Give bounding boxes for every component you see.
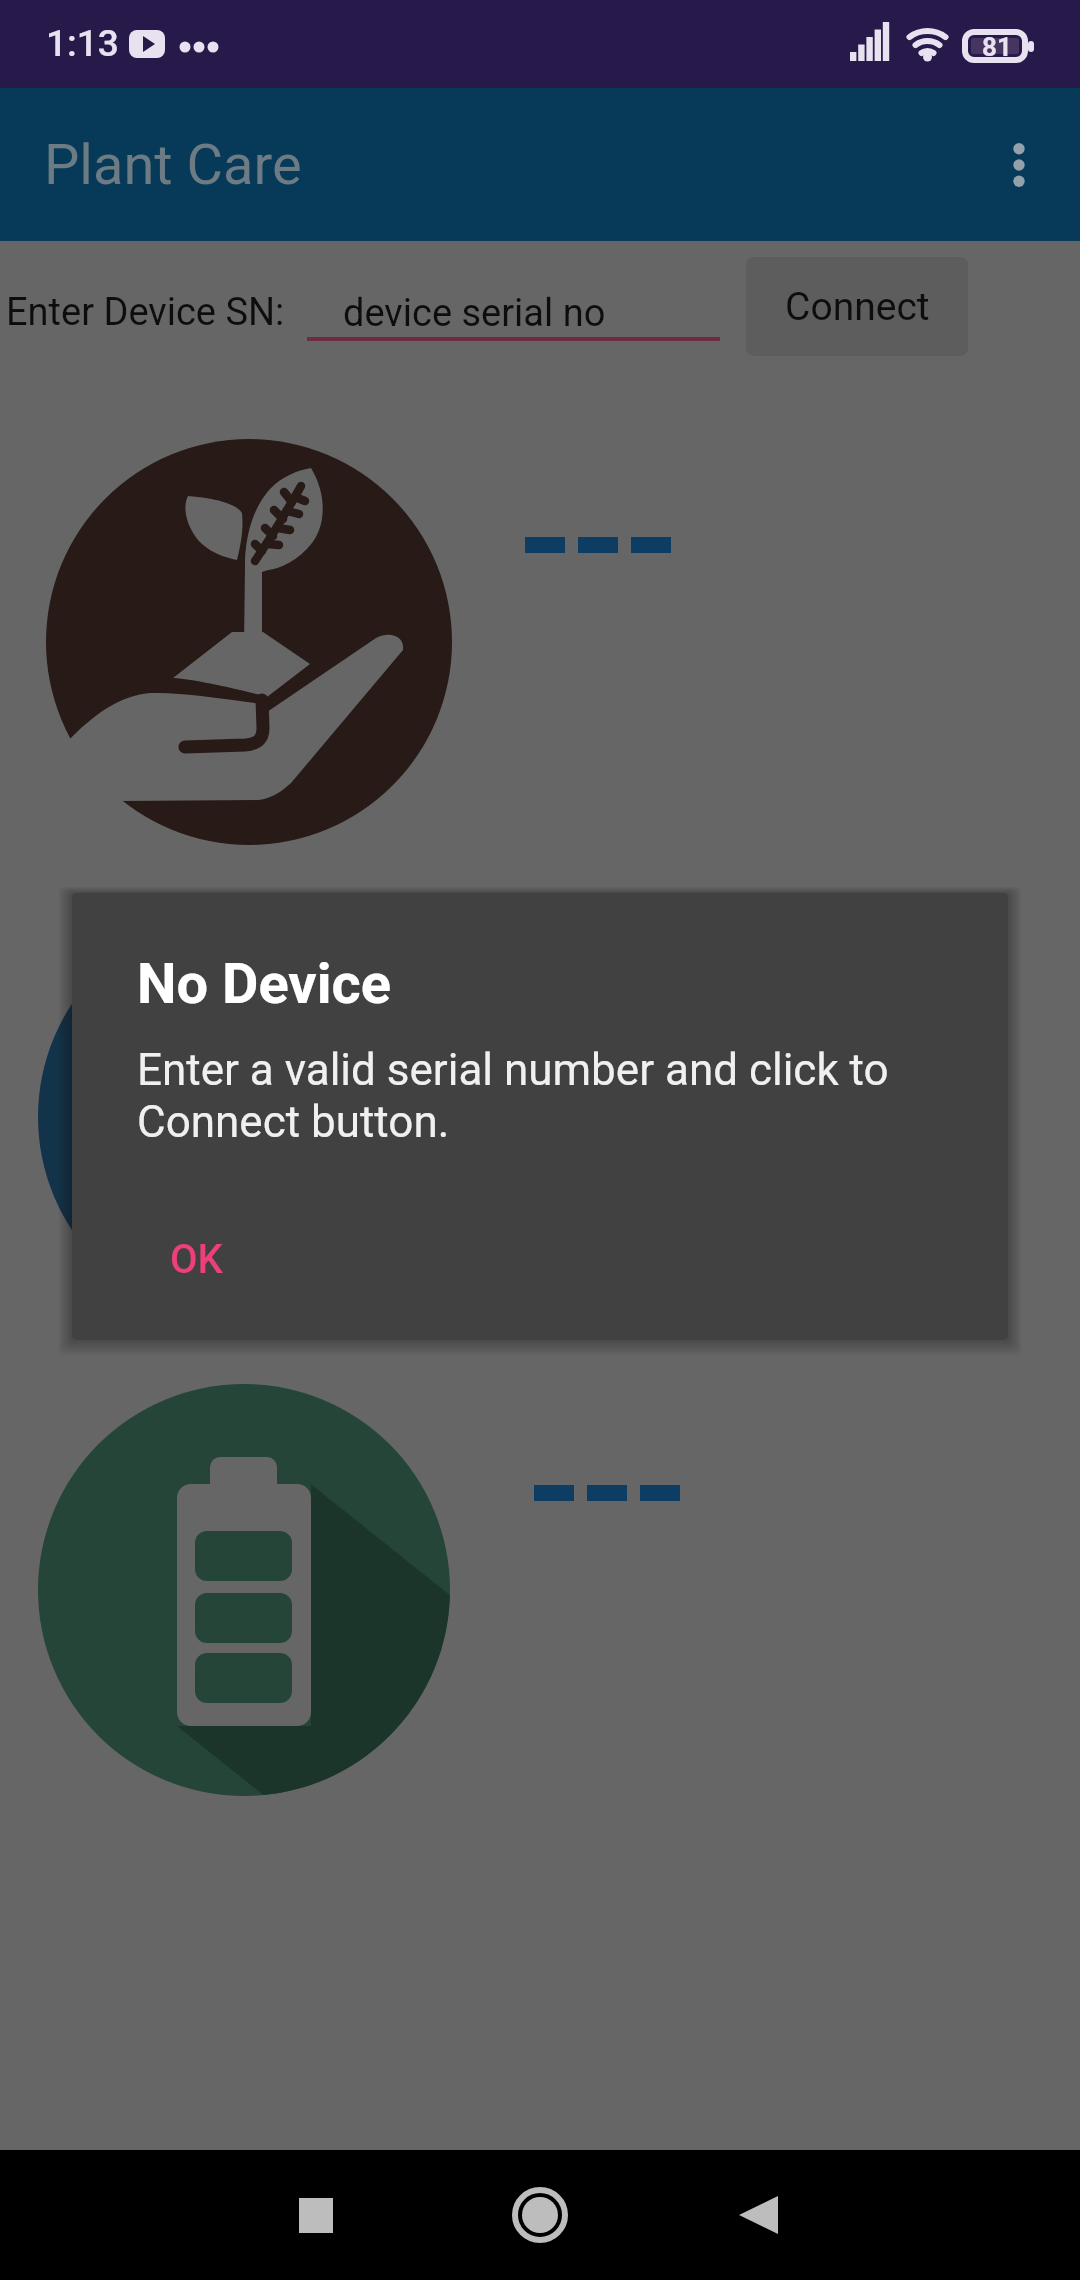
button[interactable]: device serial no [307,256,720,342]
button[interactable]: OK [142,1218,251,1301]
button[interactable]: Recent apps [256,2150,376,2280]
staticText: OK [170,1236,223,1283]
button[interactable]: Connect [746,257,968,356]
staticText: Enter Device SN: [6,290,285,335]
staticText: 1:13 [46,22,119,65]
staticText: Connect [785,284,930,330]
button[interactable]: Back [699,2150,819,2280]
button[interactable]: More options [964,110,1074,220]
staticText: No Device [137,951,391,1017]
staticText: 81 [982,32,1012,62]
staticText: Plant Care [44,132,302,198]
button[interactable]: Home [480,2150,600,2280]
staticText: Enter a valid serial number and click to… [137,1044,937,1148]
staticText: device serial no [343,291,606,336]
